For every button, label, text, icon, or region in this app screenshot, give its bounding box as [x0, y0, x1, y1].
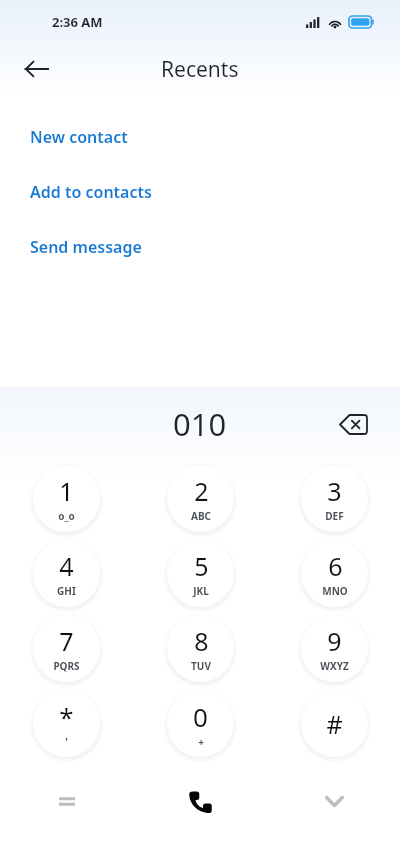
staticText: 8 [194, 624, 209, 658]
staticText: 7 [59, 624, 74, 658]
staticText: 0 [193, 699, 208, 734]
button[interactable]: * [33, 690, 100, 757]
button[interactable]: # [301, 690, 368, 757]
button[interactable]: 6 [301, 540, 368, 607]
button[interactable]: Send message [0, 219, 400, 274]
staticText: New contact [30, 126, 128, 148]
staticText: MNO [322, 584, 348, 598]
staticText: 6 [328, 549, 343, 583]
staticText: # [326, 707, 343, 741]
staticText: WXYZ [320, 659, 349, 673]
staticText: o_o [58, 509, 75, 523]
staticText: 9 [327, 624, 342, 658]
button[interactable]: 7 [33, 615, 100, 682]
button[interactable]: 9 [301, 615, 368, 682]
button[interactable]: 3 [301, 465, 368, 532]
button[interactable]: Backspace [332, 403, 374, 445]
staticText: 5 [194, 549, 209, 583]
staticText: ABC [191, 509, 211, 523]
button[interactable]: 0 [167, 690, 234, 757]
button[interactable]: 8 [167, 615, 234, 682]
staticText: 2:36 AM [52, 13, 103, 31]
staticText: JKL [193, 584, 209, 598]
staticText: ' [65, 735, 68, 749]
staticText: DEF [325, 509, 344, 523]
button[interactable]: Hide dialpad [301, 768, 368, 835]
staticText: GHI [57, 584, 76, 598]
button[interactable]: Call [167, 768, 234, 835]
button[interactable]: 4 [33, 540, 100, 607]
staticText: TUV [191, 659, 211, 673]
button[interactable]: 1 [33, 465, 100, 532]
staticText: Send message [30, 236, 142, 258]
button[interactable]: More options [33, 768, 100, 835]
staticText: Add to contacts [30, 181, 152, 203]
staticText: Recents [161, 55, 239, 84]
staticText: + [198, 735, 204, 749]
staticText: * [59, 699, 74, 734]
button[interactable]: Add to contacts [0, 164, 400, 219]
staticText: 4 [59, 549, 74, 583]
staticText: 2 [194, 474, 209, 508]
button[interactable]: New contact [0, 109, 400, 164]
staticText: PQRS [53, 659, 80, 673]
staticText: 1 [59, 474, 74, 508]
button[interactable]: 2 [167, 465, 234, 532]
staticText: 3 [327, 474, 342, 508]
button[interactable]: 5 [167, 540, 234, 607]
staticText: 010 [173, 403, 227, 445]
button[interactable]: Back [16, 49, 56, 89]
